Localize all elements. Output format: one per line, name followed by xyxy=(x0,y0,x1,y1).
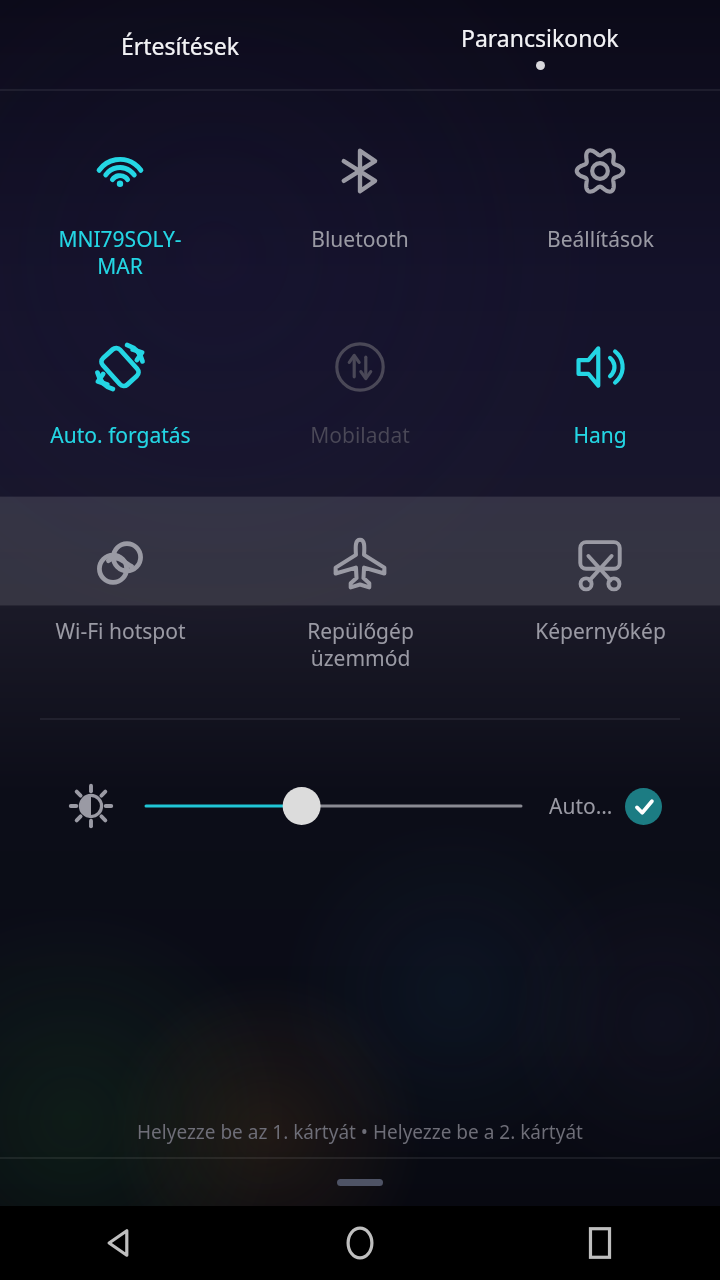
staticText: Auto… xyxy=(549,792,613,821)
button[interactable]: Repülőgép üzemmód xyxy=(240,525,480,677)
button[interactable]: Bluetooth xyxy=(240,133,480,285)
button[interactable]: Home xyxy=(240,1206,480,1280)
button[interactable]: Back xyxy=(0,1206,240,1280)
staticText: Auto. forgatás xyxy=(50,421,191,450)
button[interactable]: Recents xyxy=(480,1206,720,1280)
button[interactable]: Wi-Fi hotspot xyxy=(0,525,240,677)
staticText: MNI79SOLY- MAR xyxy=(58,225,182,280)
staticText: Értesítések xyxy=(121,30,240,61)
staticText: Mobiladat xyxy=(310,421,410,450)
button[interactable]: Hang xyxy=(480,329,720,481)
button[interactable]: Auto… xyxy=(549,788,662,825)
button[interactable]: Brightness xyxy=(62,777,120,835)
button[interactable] xyxy=(0,1159,720,1206)
staticText: Wi-Fi hotspot xyxy=(55,617,186,646)
staticText: Repülőgép üzemmód xyxy=(307,617,414,672)
button[interactable] xyxy=(146,776,521,836)
button[interactable]: Képernyőkép xyxy=(480,525,720,677)
staticText: Parancsikonok xyxy=(461,22,619,53)
button[interactable]: Parancsikonok xyxy=(360,0,720,91)
button[interactable]: Auto. forgatás xyxy=(0,329,240,481)
button[interactable]: MNI79SOLY- MAR xyxy=(0,133,240,285)
staticText: Hang xyxy=(573,421,627,450)
staticText: Képernyőkép xyxy=(535,617,666,646)
staticText: Bluetooth xyxy=(311,225,409,254)
staticText: Beállítások xyxy=(547,225,654,254)
button[interactable]: Értesítések xyxy=(0,0,360,91)
button[interactable]: Mobiladat xyxy=(240,329,480,481)
button[interactable]: Beállítások xyxy=(480,133,720,285)
staticText: Helyezze be az 1. kártyát • Helyezze be … xyxy=(137,1119,583,1145)
